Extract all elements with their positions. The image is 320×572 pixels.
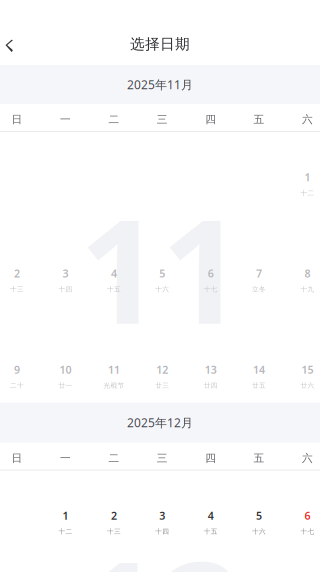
staticText: 二十 (10, 381, 24, 390)
button[interactable]: 15 (283, 325, 320, 403)
staticText: 5 (256, 508, 262, 523)
staticText: 4 (208, 508, 214, 523)
staticText: 十三 (107, 527, 121, 536)
staticText: 十九 (300, 285, 314, 293)
button[interactable]: 3 (41, 228, 90, 325)
button[interactable]: 2 (90, 471, 138, 572)
staticText: 日 (12, 113, 23, 126)
staticText: 六 (302, 113, 313, 126)
staticText: 十五 (204, 527, 218, 536)
staticText: 四 (205, 451, 216, 465)
staticText: 二 (108, 113, 119, 126)
button[interactable]: 5 (235, 471, 283, 572)
staticText: 1 (304, 170, 310, 184)
button[interactable]: 14 (235, 325, 283, 403)
staticText: 二 (108, 451, 119, 465)
staticText: 7 (256, 266, 262, 280)
button[interactable]: 4 (90, 228, 138, 325)
staticText: 2 (111, 508, 117, 523)
button[interactable]: 3 (138, 471, 186, 572)
button[interactable]: 5 (138, 228, 186, 325)
staticText: 廿四 (204, 381, 218, 390)
staticText: 十七 (204, 285, 218, 293)
staticText: 廿三 (155, 381, 169, 390)
button[interactable]: 7 (235, 228, 283, 325)
staticText: 十七 (300, 527, 314, 536)
staticText: 12 (156, 362, 168, 377)
staticText: 立冬 (252, 285, 266, 293)
button[interactable]: 6 (283, 471, 320, 572)
button[interactable]: Back (0, 22, 30, 66)
button[interactable]: 1 (283, 132, 320, 228)
staticText: 13 (205, 362, 217, 377)
staticText: 15 (301, 362, 313, 377)
staticText: 三 (157, 451, 168, 465)
staticText: 光棍节 (103, 381, 124, 390)
staticText: 五 (254, 451, 265, 465)
button[interactable]: 9 (0, 325, 41, 403)
staticText: 8 (304, 266, 310, 280)
staticText: 四 (205, 113, 216, 126)
staticText: 1 (62, 508, 68, 523)
staticText: 2025年11月 (127, 76, 193, 92)
button[interactable]: 10 (41, 325, 90, 403)
staticText: 6 (208, 266, 214, 280)
staticText: 5 (159, 266, 165, 280)
staticText: 十四 (155, 527, 169, 536)
staticText: 十四 (58, 285, 72, 293)
staticText: 廿六 (300, 381, 314, 390)
button[interactable]: 8 (283, 228, 320, 325)
button[interactable]: 13 (186, 325, 235, 403)
staticText: 6 (304, 508, 310, 523)
staticText: 2 (14, 266, 20, 280)
staticText: 十三 (10, 285, 24, 293)
staticText: 五 (254, 113, 265, 126)
button[interactable]: 1 (41, 471, 90, 572)
staticText: 选择日期 (130, 35, 190, 53)
staticText: 十二 (300, 189, 314, 197)
staticText: 14 (253, 362, 265, 377)
staticText: 3 (62, 266, 68, 280)
button[interactable]: 6 (186, 228, 235, 325)
staticText: 9 (14, 362, 20, 377)
staticText: 3 (159, 508, 165, 523)
staticText: 10 (59, 362, 71, 377)
staticText: 12 (78, 514, 242, 572)
staticText: 4 (111, 266, 117, 280)
staticText: 十六 (252, 527, 266, 536)
staticText: 十六 (155, 285, 169, 293)
button[interactable]: 4 (186, 471, 235, 572)
button[interactable]: 2 (0, 228, 41, 325)
staticText: 六 (302, 451, 313, 465)
button[interactable]: 12 (138, 325, 186, 403)
staticText: 廿五 (252, 381, 266, 390)
staticText: 一 (60, 451, 71, 465)
staticText: 廿一 (58, 381, 72, 390)
staticText: 十二 (58, 527, 72, 536)
staticText: 11 (108, 362, 120, 377)
staticText: 11 (79, 172, 243, 364)
staticText: 2025年12月 (127, 415, 193, 430)
staticText: 十五 (107, 285, 121, 293)
staticText: 日 (12, 451, 23, 465)
staticText: 三 (157, 113, 168, 126)
staticText: 一 (60, 113, 71, 126)
button[interactable]: 11 (90, 325, 138, 403)
